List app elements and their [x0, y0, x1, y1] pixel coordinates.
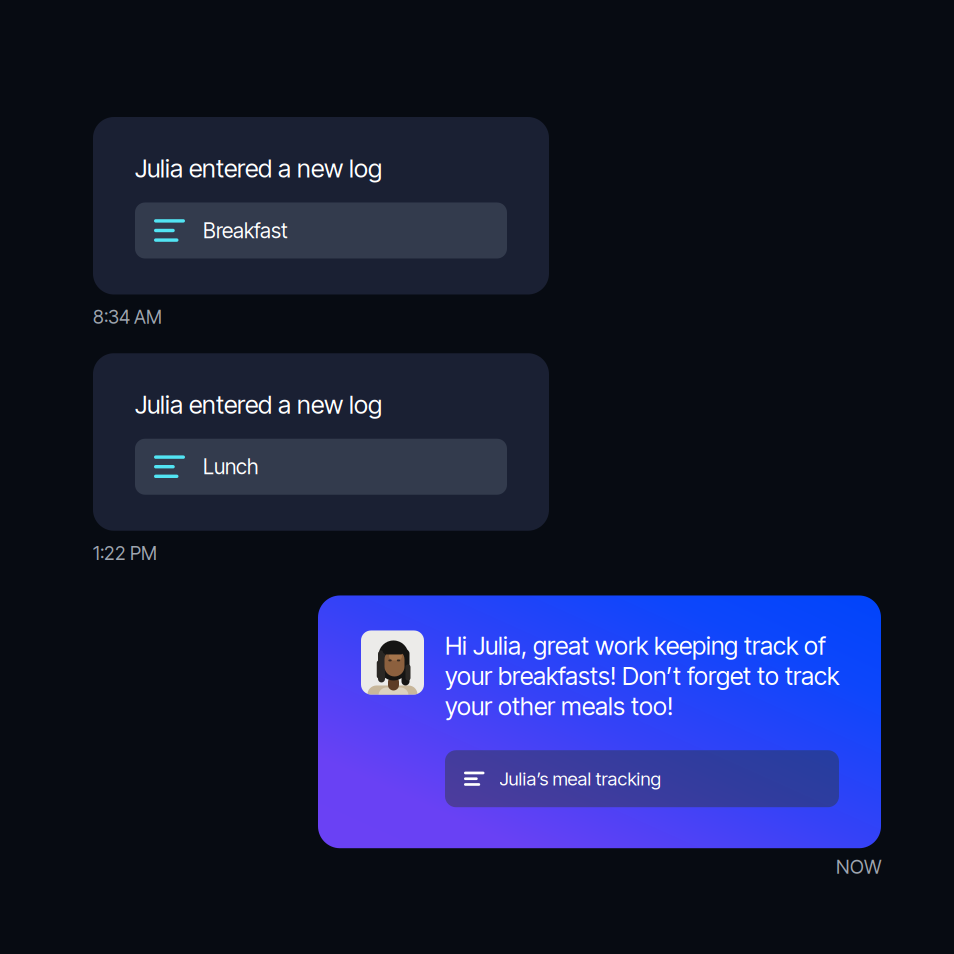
- staticText: Julia entered a new log: [135, 389, 382, 420]
- button[interactable]: Lunch: [135, 439, 507, 495]
- staticText: 8:34 AM: [93, 305, 162, 328]
- button[interactable]: Breakfast: [135, 202, 507, 258]
- staticText: Hi Julia, great work keeping track of yo…: [445, 630, 839, 721]
- button[interactable]: Julia’s meal tracking: [445, 750, 839, 807]
- staticText: NOW: [836, 855, 881, 878]
- staticText: Lunch: [203, 454, 258, 479]
- staticText: 1:22 PM: [93, 542, 157, 564]
- staticText: Breakfast: [203, 218, 288, 243]
- staticText: Julia entered a new log: [135, 153, 382, 183]
- staticText: Julia’s meal tracking: [499, 767, 661, 790]
